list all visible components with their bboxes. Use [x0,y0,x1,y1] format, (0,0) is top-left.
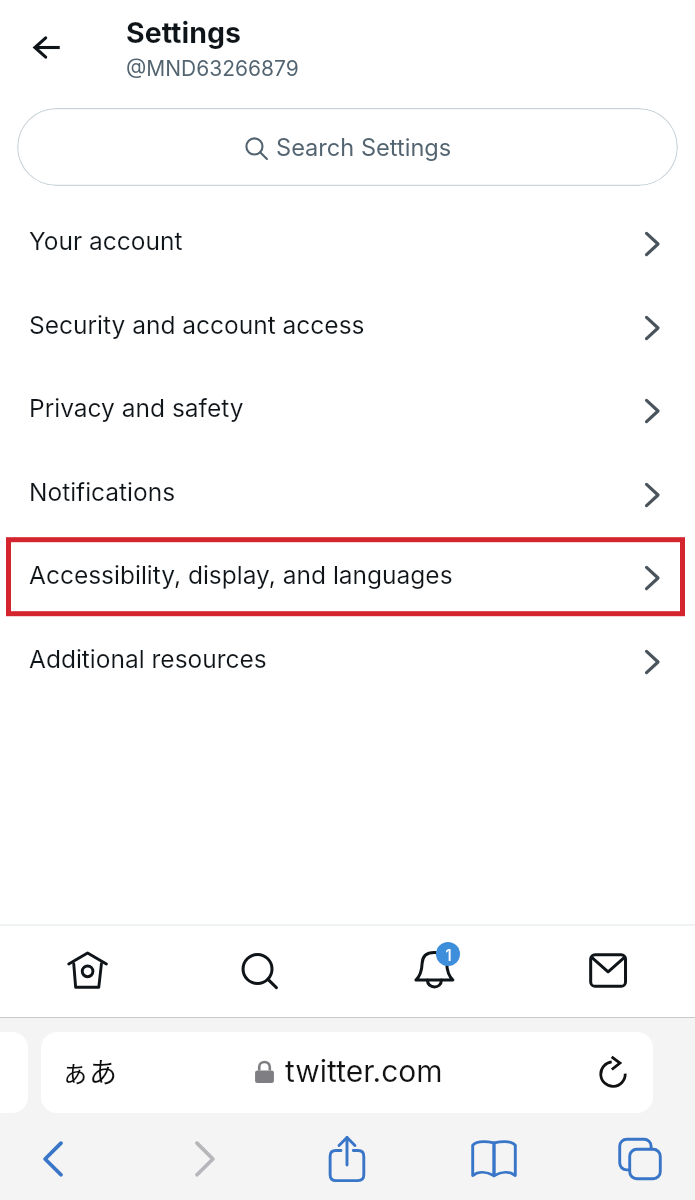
staticText: Accessibility, display, and languages [29,560,453,590]
button[interactable]: Security and account access [0,283,695,367]
button[interactable]: Additional resources [0,617,695,701]
button[interactable]: Bookmarks [462,1127,526,1191]
staticText: Notifications [29,477,176,507]
button[interactable]: Back [16,17,77,78]
button[interactable]: Tabs [608,1127,672,1191]
button[interactable]: Privacy and safety [0,366,695,450]
button[interactable]: ぁあ [41,1032,653,1113]
button[interactable]: Home [0,926,173,1013]
button[interactable]: Search [173,926,347,1013]
button[interactable]: Notifications [0,450,695,534]
button[interactable]: Accessibility, display, and languages [0,533,695,617]
button[interactable]: Search Settings [17,108,678,186]
button[interactable]: Messages [521,926,695,1013]
staticText: Privacy and safety [29,393,244,423]
button[interactable]: Share [315,1127,379,1191]
staticText: Security and account access [29,310,365,340]
staticText: Settings [126,15,241,49]
button[interactable]: Reload [593,1051,637,1095]
staticText: 1 [445,945,452,964]
button[interactable]: Forward [173,1127,237,1191]
button[interactable]: Back [21,1127,85,1191]
staticText: Your account [29,226,183,256]
staticText: @MND63266879 [126,56,299,81]
staticText: Additional resources [29,644,267,674]
staticText: twitter.com [285,1053,443,1089]
staticText: Search Settings [276,133,452,162]
button[interactable]: Notifications [347,926,521,1013]
staticText: ぁあ [61,1051,118,1092]
button[interactable]: Your account [0,199,695,283]
